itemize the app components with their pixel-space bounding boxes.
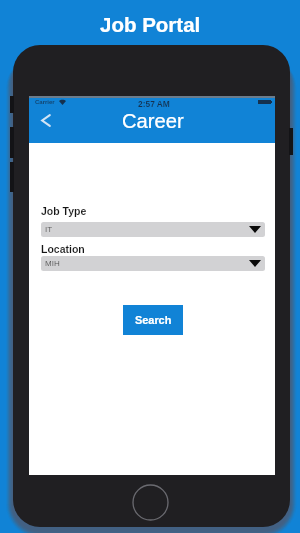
button[interactable]: Search: [123, 305, 183, 335]
staticText: Location: [41, 243, 85, 255]
staticText: Job Portal: [100, 13, 201, 36]
button[interactable]: MIH: [41, 256, 265, 271]
staticText: IT: [45, 225, 53, 234]
staticText: Career: [122, 110, 184, 133]
staticText: 2:57 AM: [138, 99, 170, 108]
button[interactable]: Back: [35, 109, 57, 131]
button[interactable]: IT: [41, 222, 265, 237]
staticText: Carrier: [35, 99, 55, 106]
staticText: Job Type: [41, 205, 87, 217]
staticText: Search: [135, 314, 172, 326]
staticText: MIH: [45, 259, 60, 268]
